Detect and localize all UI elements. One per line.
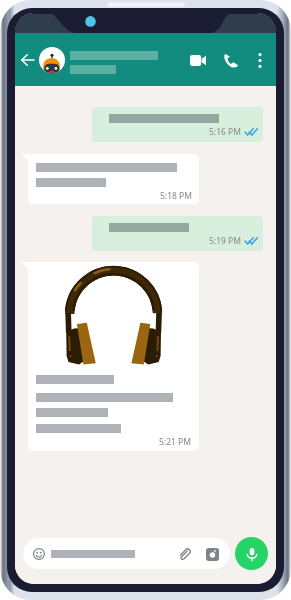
staticText: 5:18 PM — [160, 190, 192, 202]
button[interactable]: More options — [250, 50, 270, 70]
button[interactable]: Camera — [204, 546, 220, 562]
button[interactable]: 5:16 PM — [92, 107, 263, 142]
staticText: 5:16 PM — [209, 126, 241, 138]
button[interactable]: Record voice message — [235, 537, 268, 570]
button[interactable]: Contact avatar — [39, 47, 65, 73]
button[interactable]: Attach file — [23, 538, 230, 569]
staticText: 5:19 PM — [209, 235, 241, 247]
button[interactable]: 5:18 PM — [21, 154, 199, 204]
button[interactable]: 5:21 PM — [21, 262, 199, 451]
button[interactable]: Back — [18, 51, 36, 69]
button[interactable]: Video call — [187, 49, 209, 71]
button[interactable]: Attach file — [176, 546, 192, 562]
button[interactable]: Voice call — [219, 49, 241, 71]
staticText: 5:21 PM — [159, 436, 191, 448]
button[interactable]: 5:19 PM — [92, 216, 263, 251]
